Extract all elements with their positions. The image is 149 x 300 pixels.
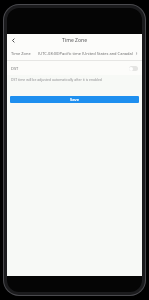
staticText: Time Zone: [11, 51, 31, 56]
staticText: Time Zone: [62, 37, 87, 44]
staticText: (UTC-08:00)Pacific time (United States a…: [38, 51, 133, 56]
button[interactable]: DST: [7, 61, 142, 75]
button[interactable]: Daylight saving time toggle: [129, 66, 138, 71]
button[interactable]: Save: [10, 96, 139, 103]
staticText: DST: [11, 66, 19, 71]
staticText: DST time will be adjusted automatically …: [11, 77, 102, 82]
button[interactable]: Back: [7, 34, 20, 47]
button[interactable]: Time Zone: [7, 47, 142, 60]
staticText: Save: [70, 97, 79, 102]
